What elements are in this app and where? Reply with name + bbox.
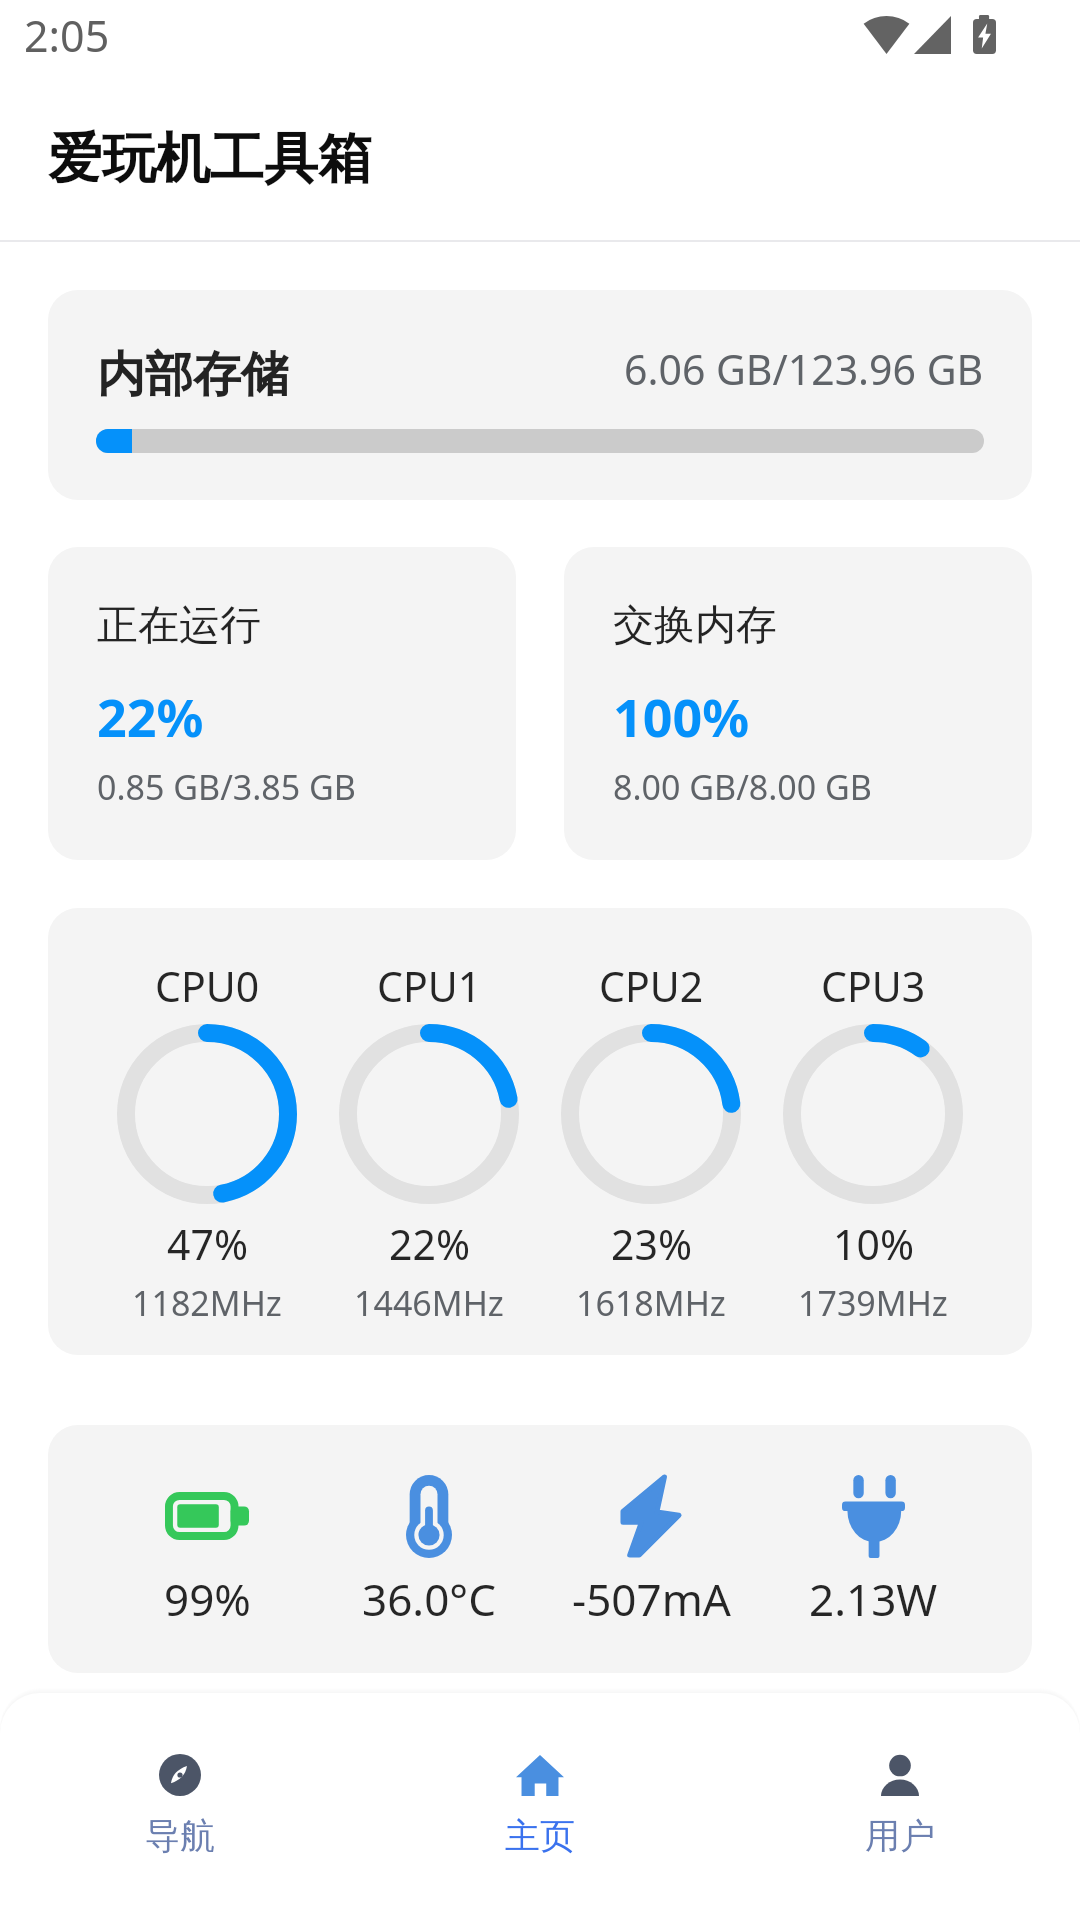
staticText: 0.85 GB/3.85 GB: [97, 764, 356, 810]
staticText: 36.0°C: [362, 1569, 496, 1629]
button[interactable]: 导航: [0, 1693, 360, 1920]
staticText: 爱玩机工具箱: [48, 125, 372, 193]
staticText: 2.13W: [809, 1569, 938, 1629]
button[interactable]: CPU0: [48, 908, 1032, 1355]
button[interactable]: 正在运行: [48, 547, 516, 860]
staticText: 6.06 GB/123.96 GB: [624, 341, 984, 397]
staticText: 8.00 GB/8.00 GB: [613, 764, 872, 810]
staticText: 100%: [613, 681, 750, 752]
staticText: CPU1: [377, 958, 482, 1014]
staticText: CPU3: [821, 958, 926, 1014]
staticText: 正在运行: [97, 600, 261, 652]
staticText: 23%: [611, 1216, 692, 1272]
staticText: 1446MHz: [354, 1280, 504, 1326]
staticText: 用户: [865, 1814, 935, 1858]
staticText: 导航: [145, 1814, 215, 1858]
staticText: 交换内存: [613, 600, 777, 652]
other: 主页: [516, 1755, 564, 1796]
other: 用户: [881, 1755, 919, 1796]
staticText: 47%: [167, 1216, 248, 1272]
staticText: 内部存储: [97, 345, 289, 405]
staticText: 10%: [833, 1216, 914, 1272]
staticText: 1739MHz: [798, 1280, 948, 1326]
staticText: CPU2: [599, 958, 704, 1014]
staticText: 2:05: [24, 6, 110, 65]
staticText: 99%: [164, 1569, 251, 1629]
staticText: 22%: [389, 1216, 470, 1272]
staticText: CPU0: [155, 958, 260, 1014]
staticText: 1182MHz: [132, 1280, 282, 1326]
staticText: 1618MHz: [576, 1280, 726, 1326]
staticText: -507mA: [572, 1569, 731, 1629]
button[interactable]: 用户: [720, 1693, 1080, 1920]
staticText: 22%: [97, 681, 204, 752]
button[interactable]: 99%: [48, 1425, 1032, 1673]
button[interactable]: 内部存储: [48, 290, 1032, 500]
button[interactable]: 交换内存: [564, 547, 1032, 860]
staticText: 主页: [505, 1814, 575, 1858]
other: 导航: [159, 1754, 201, 1796]
button[interactable]: 主页: [360, 1693, 720, 1920]
